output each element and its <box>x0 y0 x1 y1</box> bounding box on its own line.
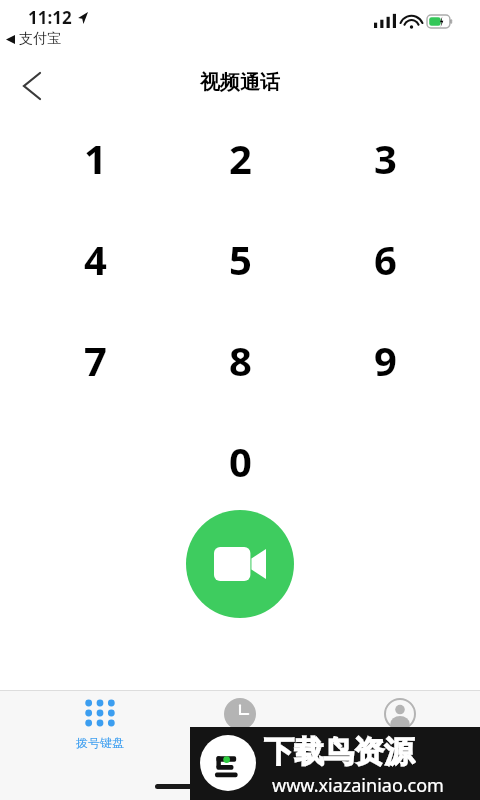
staticText: 下载鸟资源 <box>264 733 414 771</box>
button[interactable]: 3 <box>340 116 430 200</box>
button[interactable]: 6 <box>340 217 430 301</box>
staticText: 0 <box>229 434 252 488</box>
staticText: 11:12 <box>28 6 72 29</box>
button[interactable]: 8 <box>195 318 285 402</box>
staticText: 2 <box>229 131 252 185</box>
staticText: 视频通话 <box>200 70 280 95</box>
staticText: www.xiazainiao.com <box>272 773 444 798</box>
staticText: 拨号键盘 <box>76 735 124 750</box>
staticText: 8 <box>229 333 252 387</box>
staticText: 4 <box>84 232 107 286</box>
button[interactable]: 0 <box>195 419 285 503</box>
staticText: 6 <box>374 232 397 286</box>
button[interactable]: 5 <box>195 217 285 301</box>
button[interactable]: 拨号键盘 <box>40 698 160 750</box>
button[interactable]: 4 <box>50 217 140 301</box>
button[interactable]: Recents <box>200 698 280 758</box>
button[interactable]: 1 <box>50 116 140 200</box>
button[interactable]: Back <box>8 62 56 110</box>
staticText: 支付宝 <box>19 30 61 48</box>
button[interactable]: 9 <box>340 318 430 402</box>
staticText: 3 <box>374 131 397 185</box>
button[interactable]: 2 <box>195 116 285 200</box>
staticText: 5 <box>229 232 252 286</box>
staticText: 7 <box>84 333 107 387</box>
staticText: 1 <box>84 131 107 185</box>
button[interactable]: Start video call <box>186 510 294 618</box>
button[interactable]: Contacts <box>360 698 440 758</box>
button[interactable]: 7 <box>50 318 140 402</box>
staticText: 9 <box>374 333 397 387</box>
